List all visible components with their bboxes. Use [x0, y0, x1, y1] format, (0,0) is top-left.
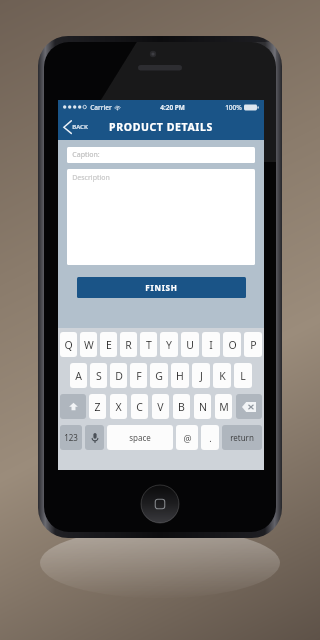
button[interactable]: G: [150, 363, 168, 388]
staticText: B: [178, 400, 185, 414]
staticText: F: [136, 369, 142, 383]
staticText: Caption:: [72, 150, 100, 160]
button[interactable]: Z: [89, 394, 106, 419]
button[interactable]: H: [171, 363, 189, 388]
button[interactable]: M: [215, 394, 232, 419]
staticText: L: [240, 369, 246, 383]
button[interactable]: P: [244, 332, 262, 357]
staticText: return: [230, 432, 254, 443]
button[interactable]: return: [222, 425, 262, 450]
staticText: C: [136, 400, 143, 414]
staticText: H: [176, 369, 184, 383]
staticText: V: [157, 400, 164, 414]
staticText: T: [146, 338, 152, 352]
button[interactable]: .: [201, 425, 219, 450]
button[interactable]: F: [130, 363, 147, 388]
staticText: G: [155, 369, 163, 383]
button[interactable]: Backspace: [236, 394, 262, 419]
button[interactable]: U: [181, 332, 199, 357]
button[interactable]: A: [70, 363, 87, 388]
button[interactable]: space: [107, 425, 173, 450]
button[interactable]: T: [140, 332, 157, 357]
staticText: N: [199, 400, 207, 414]
staticText: W: [84, 338, 94, 352]
button[interactable]: J: [192, 363, 210, 388]
button[interactable]: Dictate: [85, 425, 104, 450]
staticText: Z: [94, 400, 101, 414]
button[interactable]: O: [223, 332, 241, 357]
staticText: Y: [166, 338, 172, 352]
staticText: P: [250, 338, 257, 352]
button[interactable]: FINISH: [77, 277, 246, 298]
staticText: J: [200, 369, 203, 383]
staticText: S: [96, 369, 102, 383]
staticText: M: [219, 400, 229, 414]
button[interactable]: V: [152, 394, 169, 419]
staticText: 100%: [225, 103, 242, 112]
staticText: PRODUCT DETAILS: [109, 120, 213, 134]
staticText: @: [183, 432, 192, 444]
staticText: E: [106, 338, 112, 352]
button[interactable]: E: [100, 332, 117, 357]
staticText: Carrier: [90, 103, 112, 112]
staticText: Description: [72, 173, 110, 183]
staticText: .: [209, 432, 212, 444]
button[interactable]: C: [131, 394, 148, 419]
button[interactable]: Y: [160, 332, 178, 357]
staticText: 123: [64, 432, 78, 443]
staticText: BACK: [72, 123, 88, 131]
button[interactable]: @: [176, 425, 198, 450]
button[interactable]: B: [173, 394, 190, 419]
button[interactable]: Home: [141, 485, 179, 523]
staticText: K: [219, 369, 226, 383]
staticText: D: [115, 369, 123, 383]
button[interactable]: N: [194, 394, 211, 419]
button[interactable]: X: [110, 394, 127, 419]
button[interactable]: R: [120, 332, 137, 357]
staticText: U: [186, 338, 194, 352]
staticText: R: [125, 338, 132, 352]
button[interactable]: W: [80, 332, 97, 357]
button[interactable]: Shift: [60, 394, 86, 419]
staticText: FINISH: [145, 282, 178, 293]
staticText: X: [115, 400, 122, 414]
button[interactable]: S: [90, 363, 107, 388]
button[interactable]: Caption:: [67, 147, 255, 163]
staticText: O: [228, 338, 237, 352]
staticText: A: [75, 369, 82, 383]
button[interactable]: D: [110, 363, 127, 388]
button[interactable]: I: [202, 332, 220, 357]
staticText: I: [209, 338, 213, 352]
staticText: space: [129, 432, 151, 443]
button[interactable]: Q: [60, 332, 77, 357]
button[interactable]: K: [213, 363, 231, 388]
staticText: Q: [64, 338, 73, 352]
button[interactable]: L: [234, 363, 252, 388]
staticText: 4:20 PM: [160, 103, 185, 112]
button[interactable]: BACK: [58, 116, 94, 138]
button[interactable]: 123: [60, 425, 82, 450]
